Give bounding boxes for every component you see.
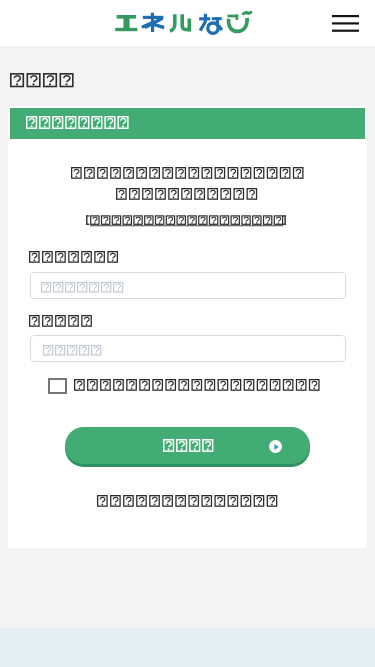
button[interactable]: Menu: [323, 1, 367, 45]
button[interactable]: [85, 212, 290, 228]
button[interactable]: [48, 376, 323, 396]
button[interactable]: [10, 108, 365, 139]
button[interactable]: [95, 493, 280, 511]
button[interactable]: [30, 335, 346, 362]
button[interactable]: [65, 427, 310, 464]
button[interactable]: [30, 272, 346, 299]
